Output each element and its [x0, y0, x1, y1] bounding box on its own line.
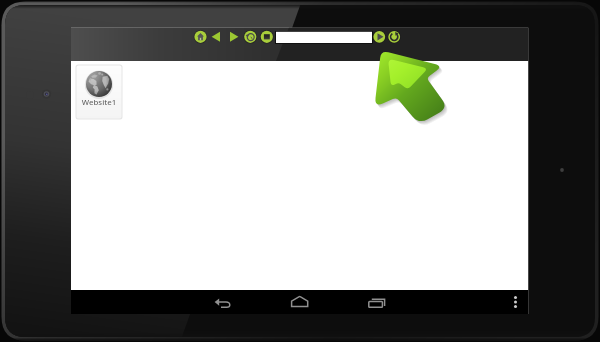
button[interactable]: More options	[507, 292, 523, 312]
button[interactable]: Forward	[226, 30, 241, 44]
button[interactable]: Home	[290, 292, 310, 312]
button[interactable]: Back	[209, 30, 224, 44]
button[interactable]: History	[243, 30, 258, 44]
button[interactable]: Home	[193, 30, 208, 44]
button[interactable]: Address bar	[276, 31, 372, 43]
button[interactable]: Go	[373, 31, 386, 43]
staticText: Website1	[76, 97, 122, 109]
button[interactable]: Recent apps	[367, 292, 387, 312]
button[interactable]: Stop	[259, 30, 274, 44]
button[interactable]: Website1	[76, 97, 122, 109]
button[interactable]: Back	[216, 292, 236, 312]
button[interactable]: Reload	[387, 31, 400, 43]
